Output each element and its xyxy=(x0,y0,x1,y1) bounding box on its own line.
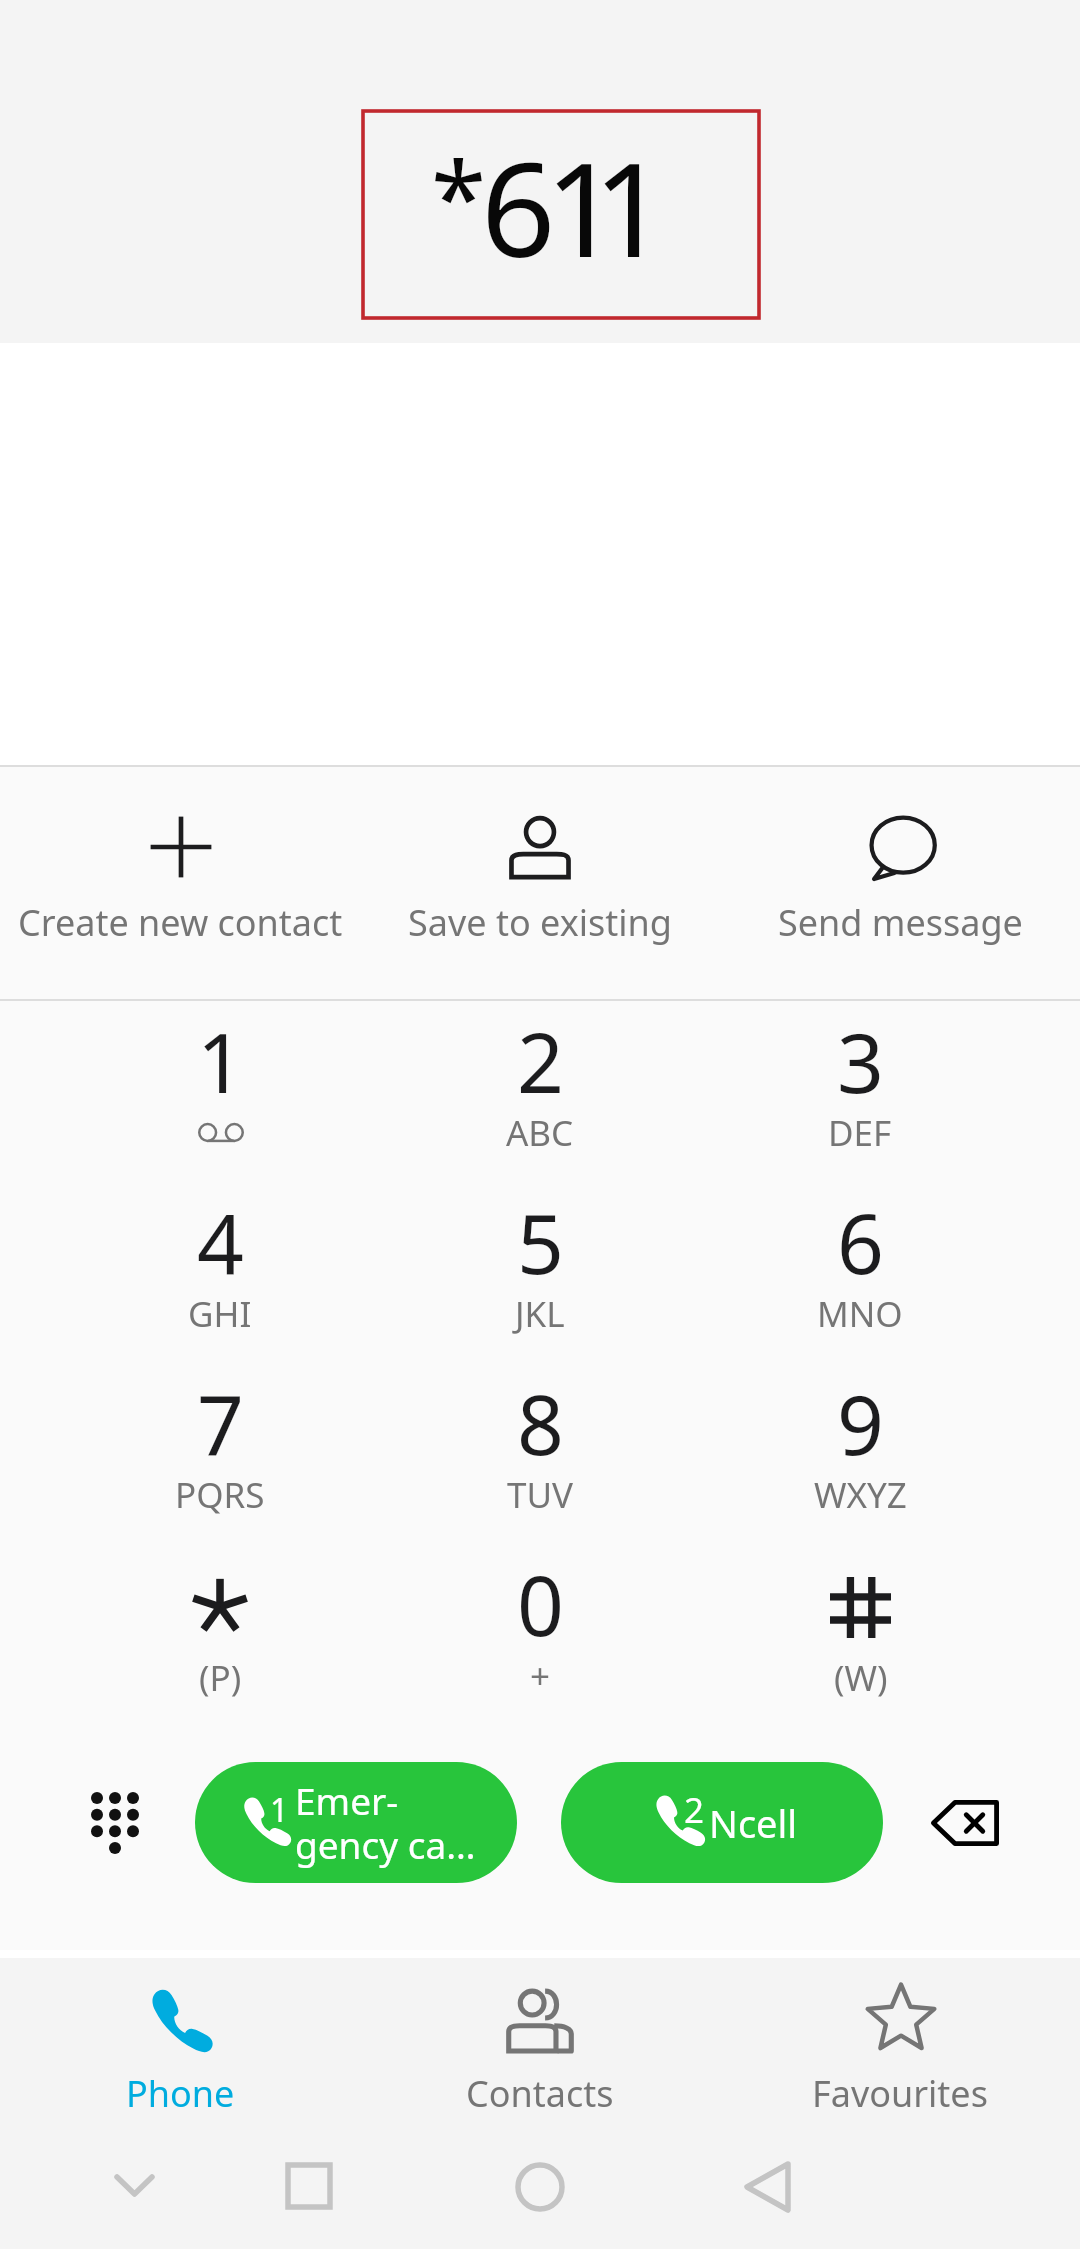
staticText: 8 xyxy=(517,1367,564,1479)
staticText: ABC xyxy=(506,1109,574,1157)
button[interactable]: 2 xyxy=(380,999,700,1180)
button[interactable]: Contacts xyxy=(360,1958,720,2132)
staticText: 7 xyxy=(197,1367,244,1479)
staticText: TUV xyxy=(507,1471,574,1519)
staticText: Create new contact xyxy=(18,898,343,947)
staticText: GHI xyxy=(188,1290,252,1338)
staticText: 1 xyxy=(593,118,668,295)
staticText: 2 xyxy=(684,1786,705,1834)
staticText: 2 xyxy=(517,1005,564,1117)
staticText: Favourites xyxy=(812,2069,988,2118)
button[interactable]: Create new contact xyxy=(0,767,360,999)
staticText: MNO xyxy=(817,1290,903,1338)
staticText: 6 xyxy=(481,118,556,295)
staticText: (P) xyxy=(199,1654,242,1702)
button[interactable]: 3 xyxy=(700,999,1020,1180)
button[interactable]: Save to existing xyxy=(360,767,720,999)
staticText: WXYZ xyxy=(814,1471,907,1519)
staticText: (W) xyxy=(834,1654,888,1702)
button[interactable]: Phone xyxy=(0,1958,360,2132)
button[interactable]: 8 xyxy=(380,1361,700,1542)
staticText: DEF xyxy=(828,1109,892,1157)
staticText: + xyxy=(530,1652,551,1700)
staticText: 1 xyxy=(545,118,620,295)
button[interactable]: 0 xyxy=(380,1542,700,1723)
staticText: Emer- gency ca… xyxy=(295,1775,476,1870)
button[interactable]: 9 xyxy=(700,1361,1020,1542)
staticText: 0 xyxy=(517,1548,564,1660)
button[interactable]: 2 xyxy=(561,1762,883,1883)
staticText: 4 xyxy=(197,1186,244,1298)
button[interactable]: Favourites xyxy=(720,1958,1080,2132)
staticText: 6 xyxy=(837,1186,884,1298)
staticText: Ncell xyxy=(709,1797,798,1849)
staticText: Send message xyxy=(778,898,1023,947)
button[interactable]: 5 xyxy=(380,1180,700,1361)
button[interactable]: (W) xyxy=(700,1542,1020,1723)
staticText: 1 xyxy=(197,1005,244,1117)
button[interactable]: Show dialpad xyxy=(60,1762,170,1883)
button[interactable]: 7 xyxy=(60,1361,380,1542)
staticText: JKL xyxy=(515,1290,565,1338)
staticText: PQRS xyxy=(175,1471,265,1519)
staticText: 9 xyxy=(837,1367,884,1479)
staticText: Contacts xyxy=(466,2069,614,2118)
staticText: 5 xyxy=(517,1186,564,1298)
button[interactable]: 4 xyxy=(60,1180,380,1361)
staticText: 1 xyxy=(270,1788,289,1832)
button[interactable]: 6 xyxy=(700,1180,1020,1361)
button[interactable]: 1 xyxy=(60,999,380,1180)
staticText: Phone xyxy=(126,2069,235,2118)
button[interactable]: Backspace xyxy=(900,1762,1030,1883)
staticText: Save to existing xyxy=(408,898,672,947)
button[interactable]: 1 xyxy=(195,1762,517,1883)
staticText: * xyxy=(431,128,487,264)
staticText: 3 xyxy=(837,1005,884,1117)
button[interactable]: (P) xyxy=(60,1542,380,1723)
button[interactable]: Send message xyxy=(720,767,1080,999)
